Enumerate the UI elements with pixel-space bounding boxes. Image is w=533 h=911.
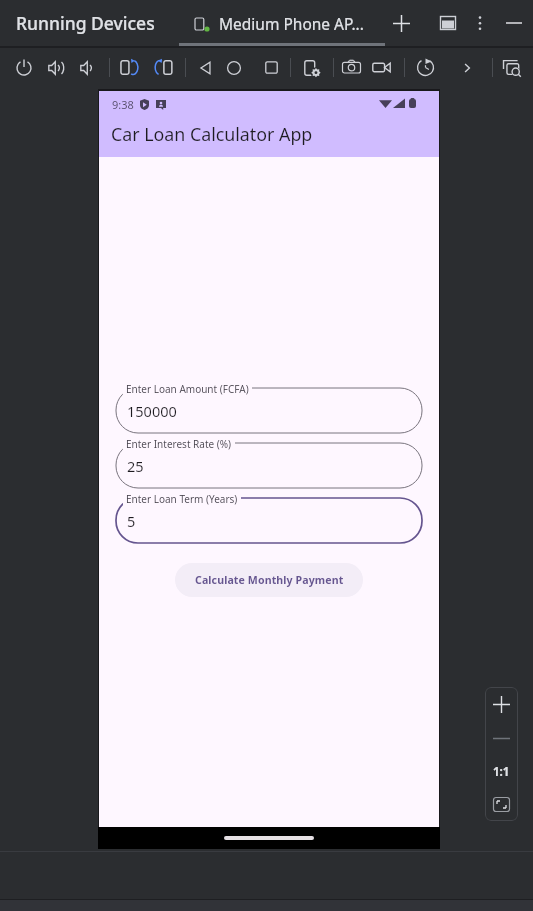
button[interactable]: Rotate right xyxy=(148,47,178,88)
button[interactable]: Home xyxy=(219,47,249,88)
staticText: Calculate Monthly Payment xyxy=(195,573,344,587)
staticText: 150000 xyxy=(127,401,177,421)
button[interactable]: Zoom in xyxy=(485,687,518,722)
button[interactable]: Overview xyxy=(256,47,286,88)
button[interactable]: Device settings xyxy=(297,47,327,88)
staticText: Enter Loan Amount (FCFA) xyxy=(126,382,249,396)
staticText: Enter Loan Term (Years) xyxy=(126,492,238,506)
button[interactable]: Screenshot xyxy=(336,47,366,88)
button[interactable]: Calculate Monthly Payment xyxy=(175,563,363,597)
staticText: Medium Phone AP... xyxy=(219,13,364,34)
staticText: 9:38 xyxy=(112,97,134,112)
button[interactable]: Record xyxy=(366,47,396,88)
button[interactable]: Add device xyxy=(387,9,415,37)
button[interactable]: Rotate left xyxy=(114,47,144,88)
button[interactable]: Zoom to fit xyxy=(485,788,518,821)
staticText: Car Loan Calculator App xyxy=(111,122,313,146)
button[interactable]: 1:1 xyxy=(485,755,518,788)
button[interactable]: History xyxy=(410,47,440,88)
staticText: 25 xyxy=(127,456,144,476)
button[interactable]: More options xyxy=(466,9,494,37)
button[interactable]: Window mode xyxy=(434,9,462,37)
staticText: Enter Interest Rate (%) xyxy=(126,437,232,451)
staticText: 5 xyxy=(127,511,136,531)
button[interactable]: Volume down xyxy=(73,47,103,88)
staticText: 1:1 xyxy=(493,764,510,780)
button[interactable]: More xyxy=(452,47,482,88)
button[interactable]: Inspect xyxy=(496,47,526,88)
button[interactable]: Zoom out xyxy=(485,722,518,755)
button[interactable]: Volume up xyxy=(41,47,71,88)
button[interactable]: Back xyxy=(191,47,221,88)
button[interactable]: Power xyxy=(9,47,39,88)
staticText: Running Devices xyxy=(16,11,155,35)
button[interactable]: Minimize xyxy=(500,9,528,37)
